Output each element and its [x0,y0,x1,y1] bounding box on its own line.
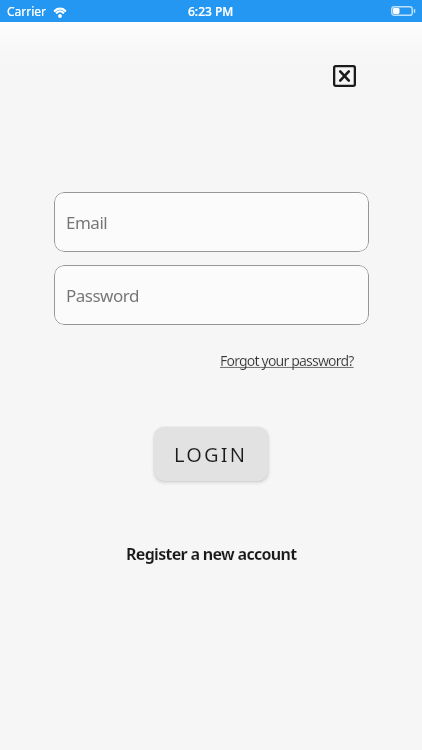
staticText: Email [66,211,108,234]
staticText: 6:23 PM [188,3,234,19]
button[interactable] [329,60,360,91]
staticText: Carrier [7,3,47,19]
staticText: LOGIN [174,441,248,468]
button[interactable]: Register a new account [126,543,297,565]
button[interactable]: Email [54,192,369,252]
button[interactable]: LOGIN [154,427,268,481]
button[interactable]: Forgot your password? [220,351,354,370]
staticText: Password [66,284,139,307]
button[interactable]: Password [54,265,369,325]
